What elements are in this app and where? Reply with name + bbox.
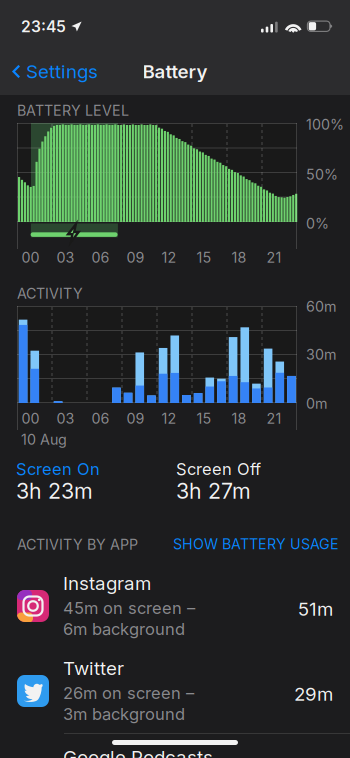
- staticText: 03: [56, 410, 74, 427]
- staticText: 00: [21, 410, 39, 427]
- staticText: 06: [91, 249, 109, 266]
- staticText: Screen Off: [176, 459, 261, 479]
- staticText: 21: [266, 249, 281, 266]
- staticText: 26m on screen –: [63, 683, 194, 703]
- staticText: 03: [56, 249, 74, 266]
- staticText: 06: [91, 410, 109, 427]
- staticText: Google Podcasts: [63, 746, 213, 758]
- staticText: 18: [231, 410, 246, 427]
- staticText: 10 Aug: [21, 431, 67, 448]
- staticText: 15: [196, 249, 211, 266]
- staticText: 3h 23m: [16, 478, 93, 504]
- staticText: 0%: [306, 215, 329, 232]
- staticText: Twitter: [63, 657, 124, 680]
- staticText: 45m on screen –: [63, 598, 195, 618]
- staticText: ACTIVITY BY APP: [17, 536, 138, 553]
- staticText: 50%: [306, 166, 338, 183]
- staticText: 09: [126, 410, 144, 427]
- staticText: 6m background: [63, 619, 185, 639]
- staticText: 09: [126, 249, 144, 266]
- button[interactable]: Settings: [12, 48, 142, 95]
- staticText: 3m background: [63, 704, 185, 724]
- staticText: Battery: [142, 60, 207, 83]
- staticText: 12: [161, 410, 176, 427]
- button[interactable]: Twitter: [0, 650, 350, 733]
- staticText: ACTIVITY: [17, 285, 83, 302]
- staticText: 100%: [306, 116, 344, 133]
- staticText: 60m: [306, 298, 337, 315]
- staticText: 15: [196, 410, 211, 427]
- button[interactable]: Instagram: [0, 561, 350, 650]
- staticText: 51m: [298, 598, 333, 620]
- staticText: 30m: [306, 346, 337, 363]
- staticText: BATTERY LEVEL: [17, 102, 129, 119]
- staticText: 23:45: [21, 17, 66, 36]
- staticText: 0m: [306, 395, 328, 412]
- staticText: Instagram: [63, 572, 151, 595]
- staticText: 12: [161, 249, 176, 266]
- staticText: 29m: [294, 683, 333, 705]
- staticText: 3h 27m: [176, 478, 251, 504]
- staticText: 21: [266, 410, 281, 427]
- staticText: 18: [231, 249, 246, 266]
- staticText: Screen On: [16, 459, 100, 479]
- staticText: 00: [21, 249, 39, 266]
- staticText: SHOW BATTERY USAGE: [173, 535, 339, 553]
- staticText: Settings: [26, 60, 98, 83]
- button[interactable]: SHOW BATTERY USAGE: [170, 536, 339, 552]
